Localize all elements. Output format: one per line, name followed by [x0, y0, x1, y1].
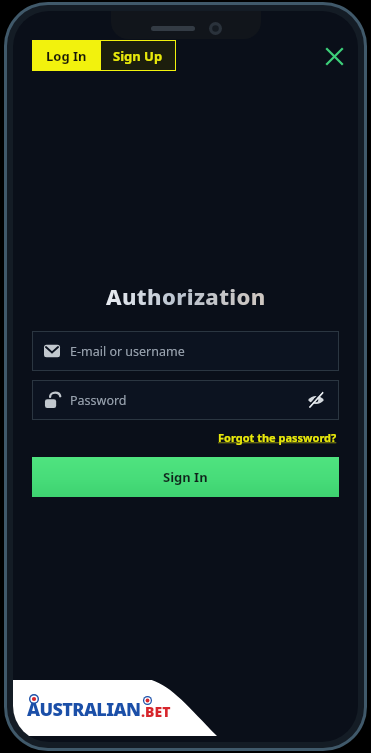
staticText: AUSTRALIAN: [27, 697, 141, 722]
staticText: Sign In: [163, 468, 208, 486]
staticText: E-mail or username: [70, 343, 185, 360]
button[interactable]: Sign In: [32, 457, 339, 497]
staticText: Authorization: [106, 281, 266, 311]
button[interactable]: Show password: [305, 389, 327, 411]
button[interactable]: Close: [319, 41, 349, 71]
button[interactable]: Sign Up: [100, 40, 176, 71]
staticText: Forgot the password?: [218, 430, 337, 445]
button[interactable]: Log In: [32, 40, 100, 71]
button[interactable]: E-mail or username: [32, 331, 339, 371]
staticText: Log In: [46, 47, 87, 65]
button[interactable]: Password: [32, 380, 339, 420]
button[interactable]: Australian.bet logo: [27, 697, 171, 722]
staticText: .BET: [141, 702, 171, 721]
button[interactable]: Forgot the password?: [216, 428, 339, 447]
staticText: Sign Up: [113, 47, 163, 65]
staticText: Password: [70, 392, 127, 409]
